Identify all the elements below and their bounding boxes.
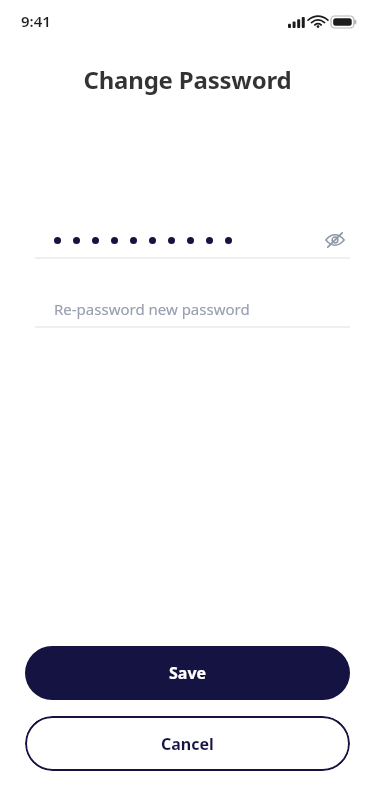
staticText: 9:41 [21, 11, 51, 31]
button[interactable]: Save [25, 646, 350, 700]
button[interactable]: Cancel [25, 716, 350, 771]
staticText: Save [169, 662, 207, 684]
staticText: Change Password [0, 63, 375, 96]
staticText: Cancel [161, 733, 214, 755]
button[interactable]: Re-password new password [35, 292, 350, 326]
staticText: Re-password new password [54, 299, 250, 319]
button[interactable]: Hide password [35, 222, 350, 258]
button[interactable]: Hide password [320, 225, 350, 255]
